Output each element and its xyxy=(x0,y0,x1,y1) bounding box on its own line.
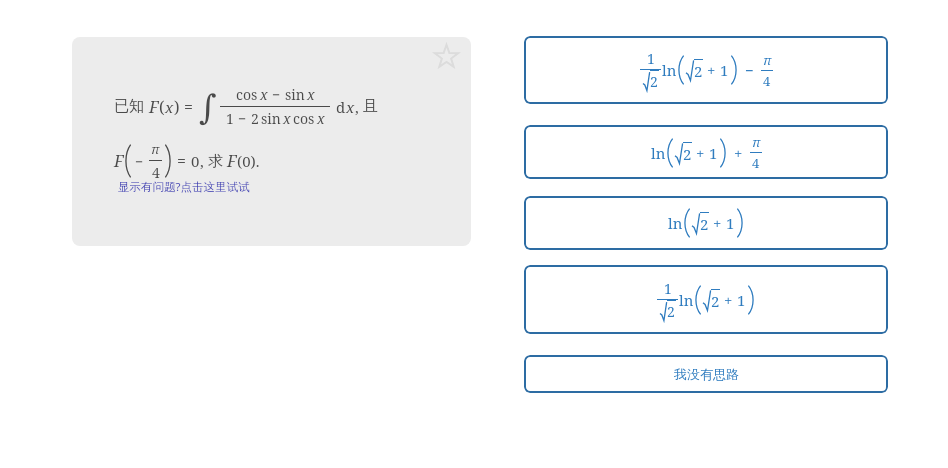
staticText: = xyxy=(177,150,186,172)
staticText: 1 xyxy=(709,143,718,163)
staticText: π xyxy=(763,51,772,69)
staticText: + xyxy=(707,60,716,80)
staticText: 已知 xyxy=(114,97,144,116)
button[interactable]: Favorite xyxy=(430,40,462,72)
staticText: = xyxy=(184,96,193,118)
staticText: ln xyxy=(662,60,677,80)
button[interactable]: ln xyxy=(524,196,888,250)
staticText: 4 xyxy=(152,163,160,182)
staticText: ln xyxy=(679,290,694,310)
staticText: 1 xyxy=(226,109,234,128)
staticText: − xyxy=(745,60,754,80)
staticText: + xyxy=(734,143,743,163)
staticText: 4 xyxy=(763,72,771,90)
staticText: sin xyxy=(285,85,305,104)
staticText: ( xyxy=(159,96,165,118)
staticText: 1 xyxy=(647,49,655,68)
staticText: 2 xyxy=(251,109,259,128)
staticText: F xyxy=(149,96,159,118)
staticText: cos xyxy=(236,85,258,104)
staticText: π xyxy=(752,133,761,151)
staticText: 2 xyxy=(694,61,703,81)
staticText: F xyxy=(227,150,237,172)
staticText: 2 xyxy=(667,302,675,321)
staticText: x xyxy=(317,109,325,128)
staticText: + xyxy=(724,290,733,310)
staticText: − xyxy=(135,152,144,171)
staticText: 1 xyxy=(664,279,672,298)
staticText: 2 xyxy=(683,144,692,164)
staticText: ∫ xyxy=(199,87,217,127)
staticText: 求 xyxy=(208,152,223,171)
button[interactable]: 1 xyxy=(524,36,888,104)
staticText: x xyxy=(283,109,291,128)
staticText: d xyxy=(336,97,346,117)
staticText: x xyxy=(307,85,315,104)
staticText: , xyxy=(200,151,204,171)
staticText: − xyxy=(238,109,247,128)
staticText: , xyxy=(355,97,359,117)
staticText: sin xyxy=(261,109,281,128)
staticText: π xyxy=(151,140,160,158)
staticText: 2 xyxy=(700,214,709,234)
staticText: x xyxy=(165,97,174,117)
button[interactable]: 显示有问题?点击这里试试 xyxy=(118,179,250,195)
staticText: ln xyxy=(651,143,666,163)
button[interactable]: 1 xyxy=(524,265,888,334)
staticText: 1 xyxy=(720,60,729,80)
staticText: 2 xyxy=(711,291,720,311)
staticText: x xyxy=(346,97,355,117)
staticText: (0). xyxy=(237,151,260,171)
staticText: 0 xyxy=(191,151,200,171)
staticText: 显示有问题?点击这里试试 xyxy=(118,179,250,195)
staticText: 我没有思路 xyxy=(674,366,739,382)
staticText: 1 xyxy=(726,213,735,233)
staticText: − xyxy=(272,85,281,104)
staticText: ln xyxy=(668,213,683,233)
staticText: ) xyxy=(174,96,180,118)
button[interactable]: 我没有思路 xyxy=(524,355,888,393)
staticText: 1 xyxy=(737,290,746,310)
staticText: F xyxy=(114,150,124,172)
staticText: 且 xyxy=(363,97,378,116)
staticText: x xyxy=(260,85,268,104)
staticText: 2 xyxy=(650,72,658,91)
staticText: cos xyxy=(293,109,315,128)
button[interactable]: ln xyxy=(524,125,888,179)
staticText: + xyxy=(713,213,722,233)
staticText: 4 xyxy=(752,154,760,172)
staticText: + xyxy=(696,143,705,163)
